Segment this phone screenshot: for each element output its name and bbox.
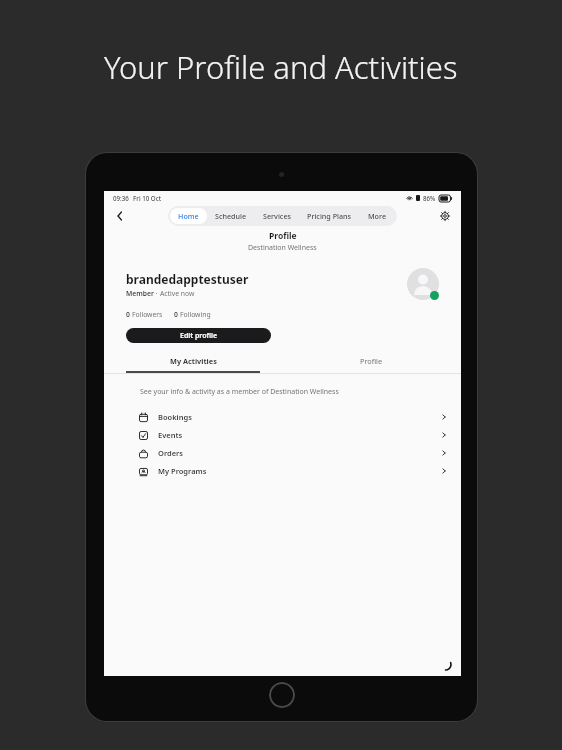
staticText: More	[368, 211, 387, 221]
button[interactable]: More	[360, 208, 395, 224]
staticText: See your info & activity as a member of …	[140, 387, 339, 397]
staticText: Profile	[360, 356, 383, 366]
button[interactable]: Services	[255, 208, 299, 224]
other: Home button	[269, 682, 295, 708]
staticText: Services	[263, 211, 291, 221]
button[interactable]: Pricing Plans	[299, 208, 360, 224]
button[interactable]: Bookings	[104, 408, 461, 426]
staticText: Pricing Plans	[307, 211, 352, 221]
staticText: Events	[158, 430, 183, 440]
button[interactable]: Orders	[104, 444, 461, 462]
button[interactable]: Profile picture	[407, 268, 439, 300]
staticText: My Activities	[170, 356, 217, 366]
button[interactable]: Edit profile	[126, 328, 271, 343]
staticText: Your Profile and Activities	[104, 46, 458, 88]
staticText: Orders	[158, 448, 184, 458]
button[interactable]: My Programs	[104, 462, 461, 480]
button[interactable]: Profile	[282, 356, 461, 373]
staticText: 0	[126, 310, 130, 319]
staticText: ·	[154, 289, 160, 298]
staticText: Following	[180, 310, 211, 319]
staticText: Schedule	[215, 211, 247, 221]
button[interactable]: 0	[174, 310, 211, 319]
button[interactable]: Back	[112, 208, 128, 224]
staticText: brandedapptestuser	[126, 271, 249, 287]
staticText: Member	[126, 289, 154, 298]
staticText: Home	[178, 211, 199, 221]
button[interactable]: Schedule	[207, 208, 255, 224]
button[interactable]: Events	[104, 426, 461, 444]
staticText: Edit profile	[180, 331, 218, 341]
button[interactable]: Home	[170, 208, 207, 224]
staticText: Profile	[269, 230, 297, 242]
staticText: Followers	[132, 310, 163, 319]
staticText: Destination Wellness	[248, 243, 317, 253]
staticText: 86%	[423, 194, 436, 202]
staticText: Bookings	[158, 412, 192, 422]
staticText: 0	[174, 310, 178, 319]
button[interactable]: My Activities	[104, 356, 282, 373]
staticText: 09:36	[113, 194, 129, 202]
staticText: Fri 10 Oct	[133, 194, 162, 202]
button[interactable]: Settings	[437, 208, 453, 224]
staticText: Active now	[160, 289, 195, 298]
button[interactable]: 0	[126, 310, 163, 319]
staticText: My Programs	[158, 466, 207, 476]
